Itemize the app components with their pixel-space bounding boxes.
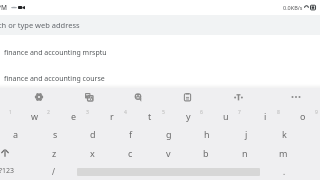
button[interactable]: o — [284, 107, 320, 125]
staticText: 1 — [9, 109, 12, 116]
staticText: 3 — [86, 109, 89, 116]
staticText: ch or type web address — [0, 20, 80, 30]
staticText: finance and accounting course — [4, 74, 105, 84]
button[interactable]: k — [265, 125, 303, 143]
button[interactable]: Clipboard — [176, 87, 198, 107]
button[interactable]: j — [227, 125, 265, 143]
button[interactable]: / — [40, 162, 66, 180]
button[interactable]: ?123 — [0, 162, 24, 180]
staticText: x — [90, 147, 95, 159]
button[interactable]: v — [149, 144, 187, 162]
staticText: c — [128, 147, 133, 159]
staticText: finance and accounting mrsptu — [4, 48, 107, 58]
button[interactable]: x — [73, 144, 111, 162]
button[interactable]: a — [0, 125, 35, 143]
button[interactable]: y — [169, 107, 207, 125]
staticText: z — [52, 147, 57, 159]
staticText: ?123 — [0, 166, 15, 176]
button[interactable]: w — [16, 107, 54, 125]
staticText: PM — [0, 3, 7, 12]
staticText: / — [52, 166, 55, 177]
staticText: 8 — [277, 109, 280, 116]
button[interactable]: GIF — [78, 87, 100, 107]
staticText: r — [110, 110, 114, 122]
button[interactable]: q — [0, 107, 16, 125]
staticText: m — [279, 147, 288, 159]
staticText: e — [71, 110, 77, 122]
staticText: 5 — [162, 109, 165, 116]
staticText: a — [13, 128, 19, 140]
staticText: k — [282, 128, 287, 140]
staticText: . — [283, 166, 286, 177]
button[interactable]: m — [264, 144, 302, 162]
button[interactable]: i — [246, 107, 284, 125]
button[interactable]: g — [150, 125, 188, 143]
button[interactable]: n — [226, 144, 264, 162]
staticText: s — [53, 128, 58, 140]
button[interactable]: ch or type web address — [0, 15, 320, 35]
button[interactable]: c — [111, 144, 149, 162]
button[interactable]: d — [74, 125, 112, 143]
button[interactable]: s — [36, 125, 74, 143]
staticText: 7 — [238, 109, 241, 116]
button[interactable]: finance and accounting mrsptu — [0, 41, 320, 65]
button[interactable]: Text editing — [227, 87, 249, 107]
staticText: n — [242, 147, 248, 159]
staticText: 0.0KB/s — [283, 4, 303, 11]
button[interactable]: u — [207, 107, 245, 125]
button[interactable]: e — [55, 107, 93, 125]
button[interactable]: r — [93, 107, 131, 125]
staticText: h — [204, 128, 210, 140]
button[interactable]: More options — [285, 87, 307, 107]
staticText: f — [129, 128, 133, 140]
staticText: o — [300, 110, 306, 122]
staticText: u — [223, 110, 229, 122]
button[interactable]: finance and accounting course — [0, 67, 320, 91]
button[interactable]: t — [131, 107, 169, 125]
staticText: 4 — [124, 109, 127, 116]
staticText: j — [245, 128, 248, 140]
staticText: i — [264, 110, 267, 122]
button[interactable]: h — [188, 125, 226, 143]
staticText: y — [186, 110, 191, 122]
button[interactable]: z — [35, 144, 73, 162]
staticText: b — [203, 147, 209, 159]
staticText: 2 — [47, 109, 50, 116]
button[interactable]: Shift — [0, 144, 20, 162]
button[interactable]: Settings — [28, 87, 50, 107]
staticText: t — [148, 110, 152, 122]
button[interactable]: f — [112, 125, 150, 143]
staticText: w — [31, 110, 39, 122]
button[interactable]: Stickers — [127, 87, 149, 107]
staticText: 9 — [315, 109, 318, 116]
button[interactable]: b — [187, 144, 225, 162]
staticText: v — [166, 147, 171, 159]
button[interactable]: . — [271, 162, 297, 180]
staticText: 6 — [200, 109, 203, 116]
staticText: g — [166, 128, 172, 140]
staticText: d — [90, 128, 96, 140]
